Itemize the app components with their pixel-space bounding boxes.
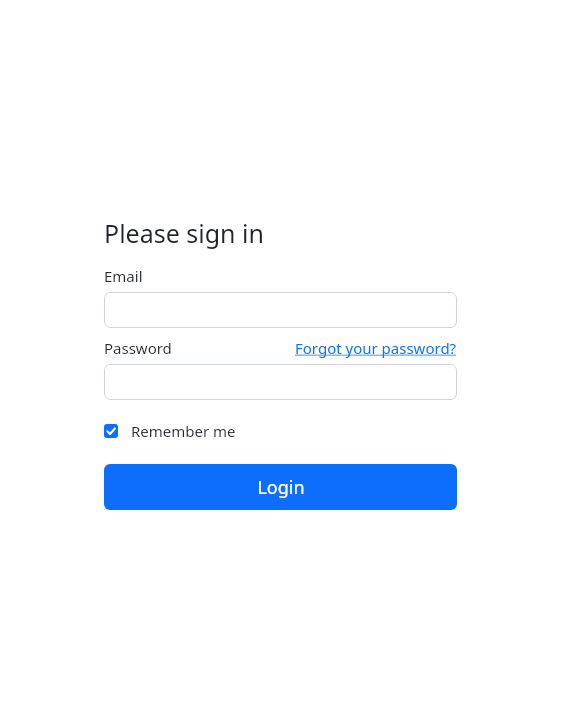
button[interactable] (104, 364, 457, 400)
staticText: Password (104, 338, 172, 358)
staticText: Login (257, 475, 305, 500)
staticText: Forgot your password? (295, 338, 457, 358)
staticText: Email (104, 266, 143, 286)
staticText: Remember me (131, 421, 236, 441)
button[interactable]: Forgot your password? (295, 338, 457, 358)
button[interactable] (104, 292, 457, 328)
staticText: Please sign in (104, 216, 264, 250)
button[interactable]: Login (104, 464, 457, 510)
button[interactable]: Remember me (104, 421, 236, 441)
